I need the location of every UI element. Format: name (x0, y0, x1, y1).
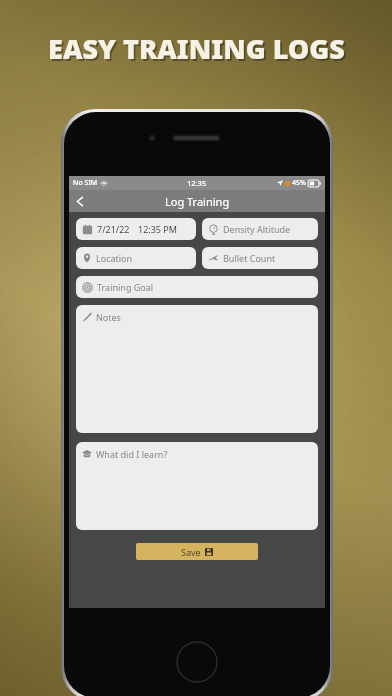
staticText: No SIM (73, 178, 98, 188)
button[interactable]: Training Goal (76, 276, 318, 298)
staticText: 12:35 (187, 178, 207, 188)
button[interactable]: What did I learn? (76, 442, 318, 530)
button[interactable]: Density Altitude (202, 218, 318, 240)
staticText: Training Goal (97, 281, 154, 293)
staticText: 45% (292, 178, 306, 188)
staticText: What did I learn? (96, 448, 168, 460)
staticText: EASY TRAINING LOGS (50, 32, 347, 69)
button[interactable]: Home (176, 641, 218, 683)
button[interactable]: Bullet Count (202, 247, 318, 269)
staticText: Density Altitude (223, 223, 291, 235)
button[interactable]: Save (136, 543, 258, 560)
staticText: 12:35 PM (138, 223, 177, 235)
staticText: EASY TRAINING LOGS (48, 30, 345, 67)
button[interactable]: 7/21/22 (76, 218, 196, 240)
button[interactable]: Location (76, 247, 196, 269)
staticText: Log Training (165, 194, 230, 209)
staticText: 7/21/22 (97, 223, 130, 235)
staticText: Bullet Count (223, 252, 276, 264)
staticText: Save (181, 546, 201, 558)
staticText: Location (96, 252, 133, 264)
button[interactable]: Back (69, 190, 91, 212)
staticText: Notes (96, 311, 121, 323)
button[interactable]: Notes (76, 305, 318, 433)
